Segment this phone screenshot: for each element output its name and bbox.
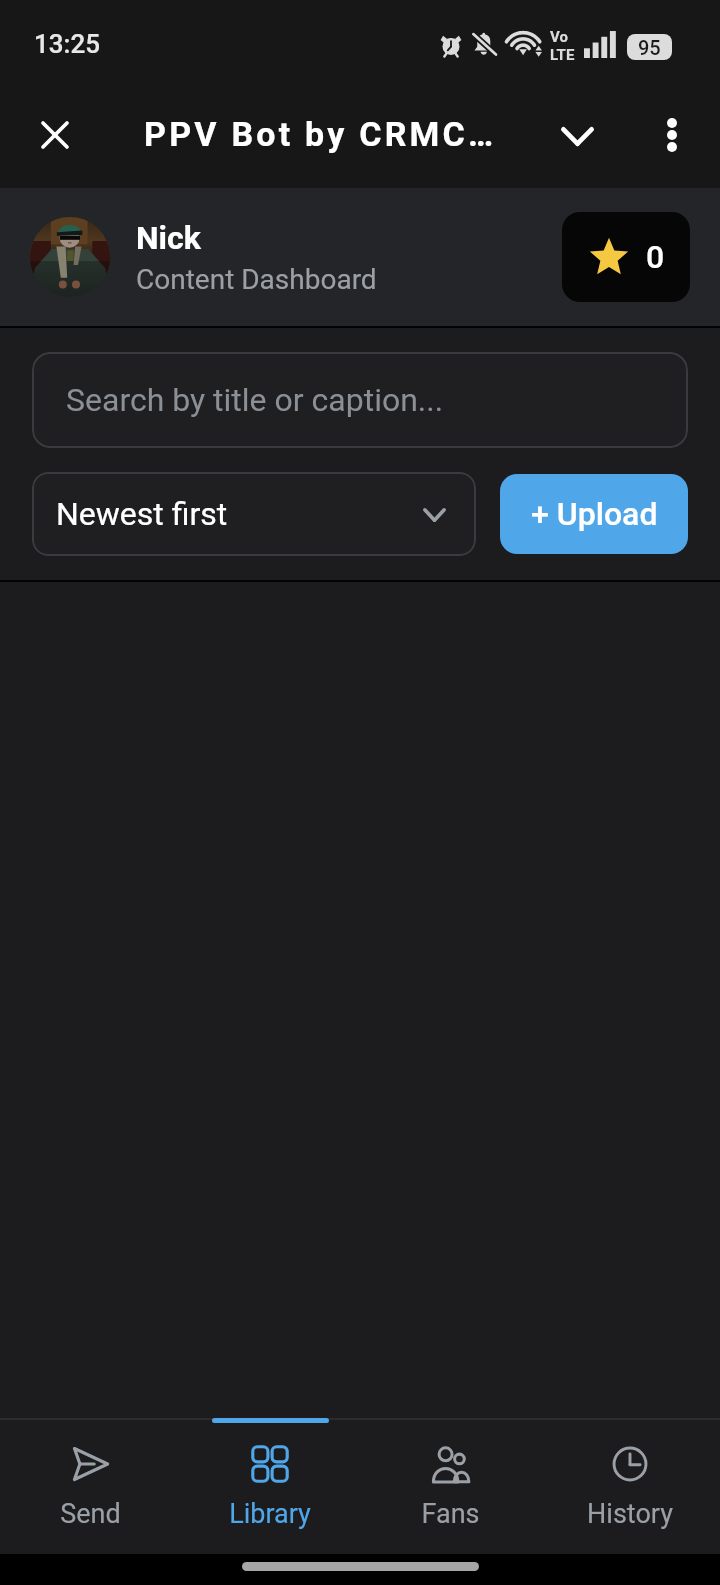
staticText: + Upload <box>531 495 658 533</box>
button[interactable]: Newest first <box>32 472 476 556</box>
staticText: Fans <box>421 1498 480 1530</box>
button[interactable]: 0 <box>562 212 690 302</box>
staticText: Newest first <box>56 495 228 533</box>
button[interactable]: More options <box>632 95 712 175</box>
staticText: Search by title or caption... <box>66 381 444 419</box>
staticText: 0 <box>646 238 665 276</box>
staticText: Vo <box>550 28 568 46</box>
button[interactable]: Expand <box>537 96 617 176</box>
staticText: LTE <box>550 46 575 64</box>
staticText: 13:25 <box>34 29 101 59</box>
button[interactable]: Send <box>0 1418 180 1554</box>
button[interactable]: + Upload <box>500 474 688 554</box>
button[interactable]: Search by title or caption... <box>32 352 688 448</box>
staticText: PPV Bot by CRMC… <box>144 114 497 154</box>
staticText: Content Dashboard <box>136 263 377 296</box>
button[interactable]: History <box>540 1418 720 1554</box>
staticText: 95 <box>638 36 661 59</box>
button[interactable]: Close <box>15 95 95 175</box>
button[interactable]: Library <box>180 1418 360 1554</box>
staticText: Library <box>229 1498 311 1530</box>
staticText: Nick <box>136 219 201 257</box>
staticText: Send <box>60 1498 121 1530</box>
staticText: History <box>587 1498 673 1530</box>
button[interactable]: Fans <box>360 1418 540 1554</box>
